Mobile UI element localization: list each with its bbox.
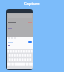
- staticText: Capture: [24, 1, 40, 6]
- button[interactable]: [8, 28, 32, 29]
- button[interactable]: Save: [28, 41, 32, 43]
- other: Keyboard: [7, 49, 33, 69]
- button[interactable]: [8, 22, 32, 23]
